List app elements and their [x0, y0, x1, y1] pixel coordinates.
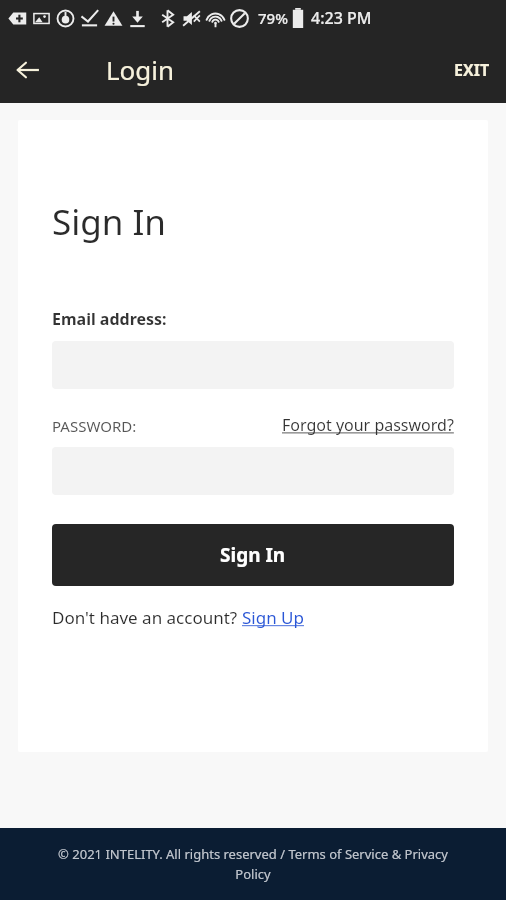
staticText: Sign Up	[242, 606, 304, 629]
button[interactable]: Sign In	[52, 524, 454, 586]
staticText: EXIT	[454, 59, 490, 81]
button[interactable]: Sign Up	[242, 606, 304, 629]
button[interactable]: EXIT	[438, 36, 506, 103]
staticText: Sign In	[52, 198, 166, 246]
staticText: Forgot your password?	[282, 414, 454, 436]
staticText: Sign In	[220, 542, 286, 568]
button[interactable]: Forgot your password?	[282, 414, 454, 436]
staticText: Login	[106, 52, 175, 87]
staticText: Don't have an account?	[52, 606, 242, 629]
staticText: PASSWORD:	[52, 416, 137, 436]
staticText: 4:23 PM	[311, 7, 372, 29]
staticText: © 2021 INTELITY. All rights reserved / T…	[58, 845, 448, 883]
staticText: Email address:	[52, 308, 167, 330]
button[interactable]: Back	[0, 42, 56, 98]
staticText: 79%	[258, 8, 288, 28]
